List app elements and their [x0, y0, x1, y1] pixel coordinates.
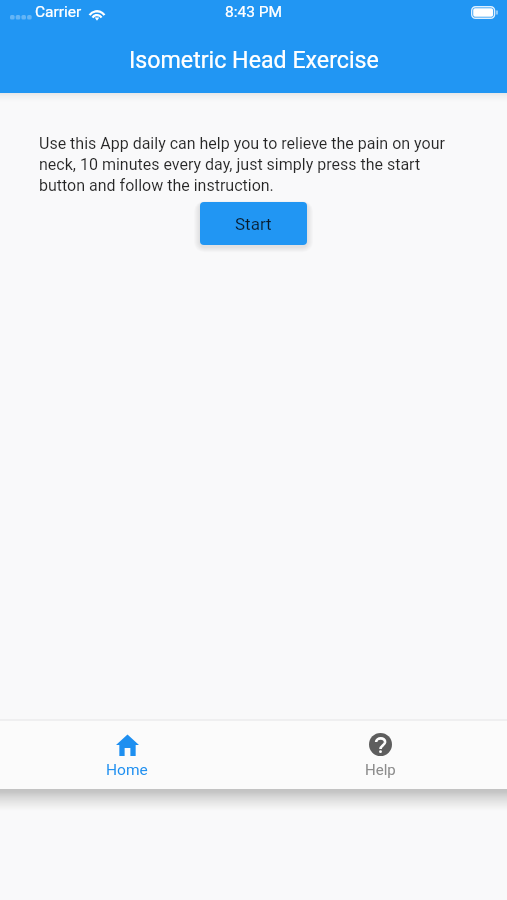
- staticText: Help: [365, 761, 396, 779]
- other: Help: [369, 733, 392, 756]
- button[interactable]: Help: [337, 721, 424, 789]
- staticText: 8:43 PM: [225, 3, 283, 21]
- button[interactable]: Home: [78, 721, 176, 789]
- staticText: Home: [106, 761, 148, 779]
- button[interactable]: Start: [200, 202, 307, 245]
- staticText: Isometric Head Exercise: [129, 46, 379, 73]
- staticText: Use this App daily can help you to relie…: [39, 134, 459, 195]
- other: Home: [116, 733, 139, 756]
- staticText: Start: [235, 214, 272, 234]
- staticText: Carrier: [35, 3, 82, 21]
